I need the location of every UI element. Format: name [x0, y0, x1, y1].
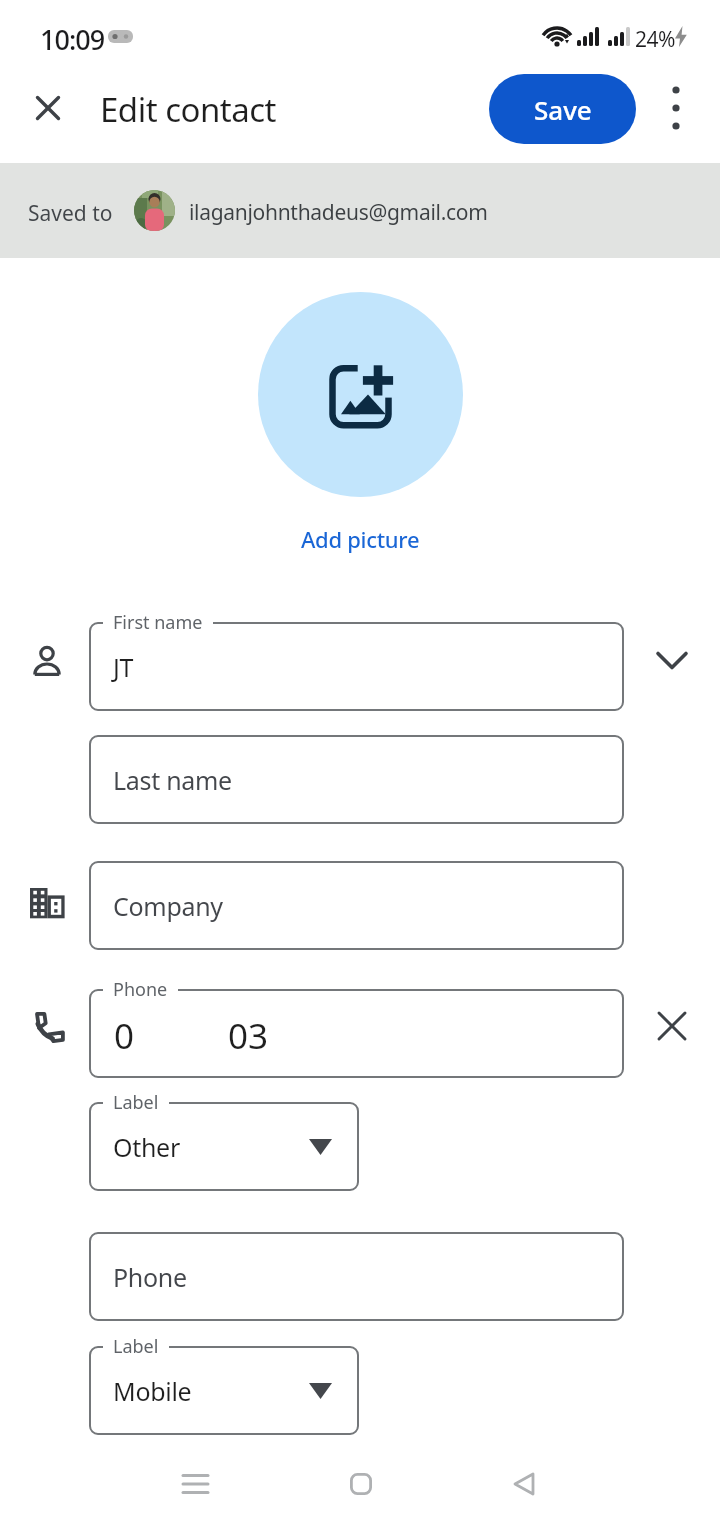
button[interactable]: Mobile — [89, 1346, 359, 1435]
staticText: ilaganjohnthadeus@gmail.com — [189, 198, 488, 227]
button[interactable]: Add picture — [0, 520, 720, 558]
button[interactable]: Company — [89, 861, 624, 950]
button[interactable]: Last name — [89, 735, 624, 824]
button[interactable]: Other — [89, 1102, 359, 1191]
button[interactable] — [258, 292, 463, 497]
button[interactable] — [337, 1460, 385, 1508]
staticText: 24% — [635, 25, 675, 54]
staticText: 0 — [114, 1012, 135, 1060]
button[interactable] — [89, 989, 624, 1078]
staticText: Other — [113, 1130, 180, 1164]
staticText: Edit contact — [100, 87, 277, 132]
button[interactable]: Save — [489, 74, 636, 144]
staticText: Label — [113, 1334, 159, 1359]
staticText: Phone — [113, 1260, 187, 1294]
button[interactable] — [648, 636, 696, 684]
button[interactable] — [24, 84, 72, 132]
staticText: JT — [113, 650, 134, 684]
staticText: Last name — [113, 763, 232, 797]
button[interactable]: JT — [89, 622, 624, 711]
staticText: Phone — [113, 977, 168, 1002]
staticText: First name — [113, 610, 203, 635]
button[interactable] — [499, 1460, 547, 1508]
button[interactable] — [652, 84, 700, 132]
button[interactable]: Phone — [89, 1232, 624, 1321]
staticText: Saved to — [28, 199, 113, 228]
staticText: Mobile — [113, 1374, 192, 1408]
staticText: 10:09 — [40, 21, 105, 58]
staticText: Company — [113, 889, 223, 923]
staticText: Add picture — [301, 524, 420, 554]
button[interactable] — [171, 1460, 219, 1508]
staticText: Label — [113, 1090, 159, 1115]
button[interactable] — [648, 1002, 696, 1050]
staticText: Save — [534, 92, 592, 127]
staticText: 03 — [228, 1012, 269, 1060]
